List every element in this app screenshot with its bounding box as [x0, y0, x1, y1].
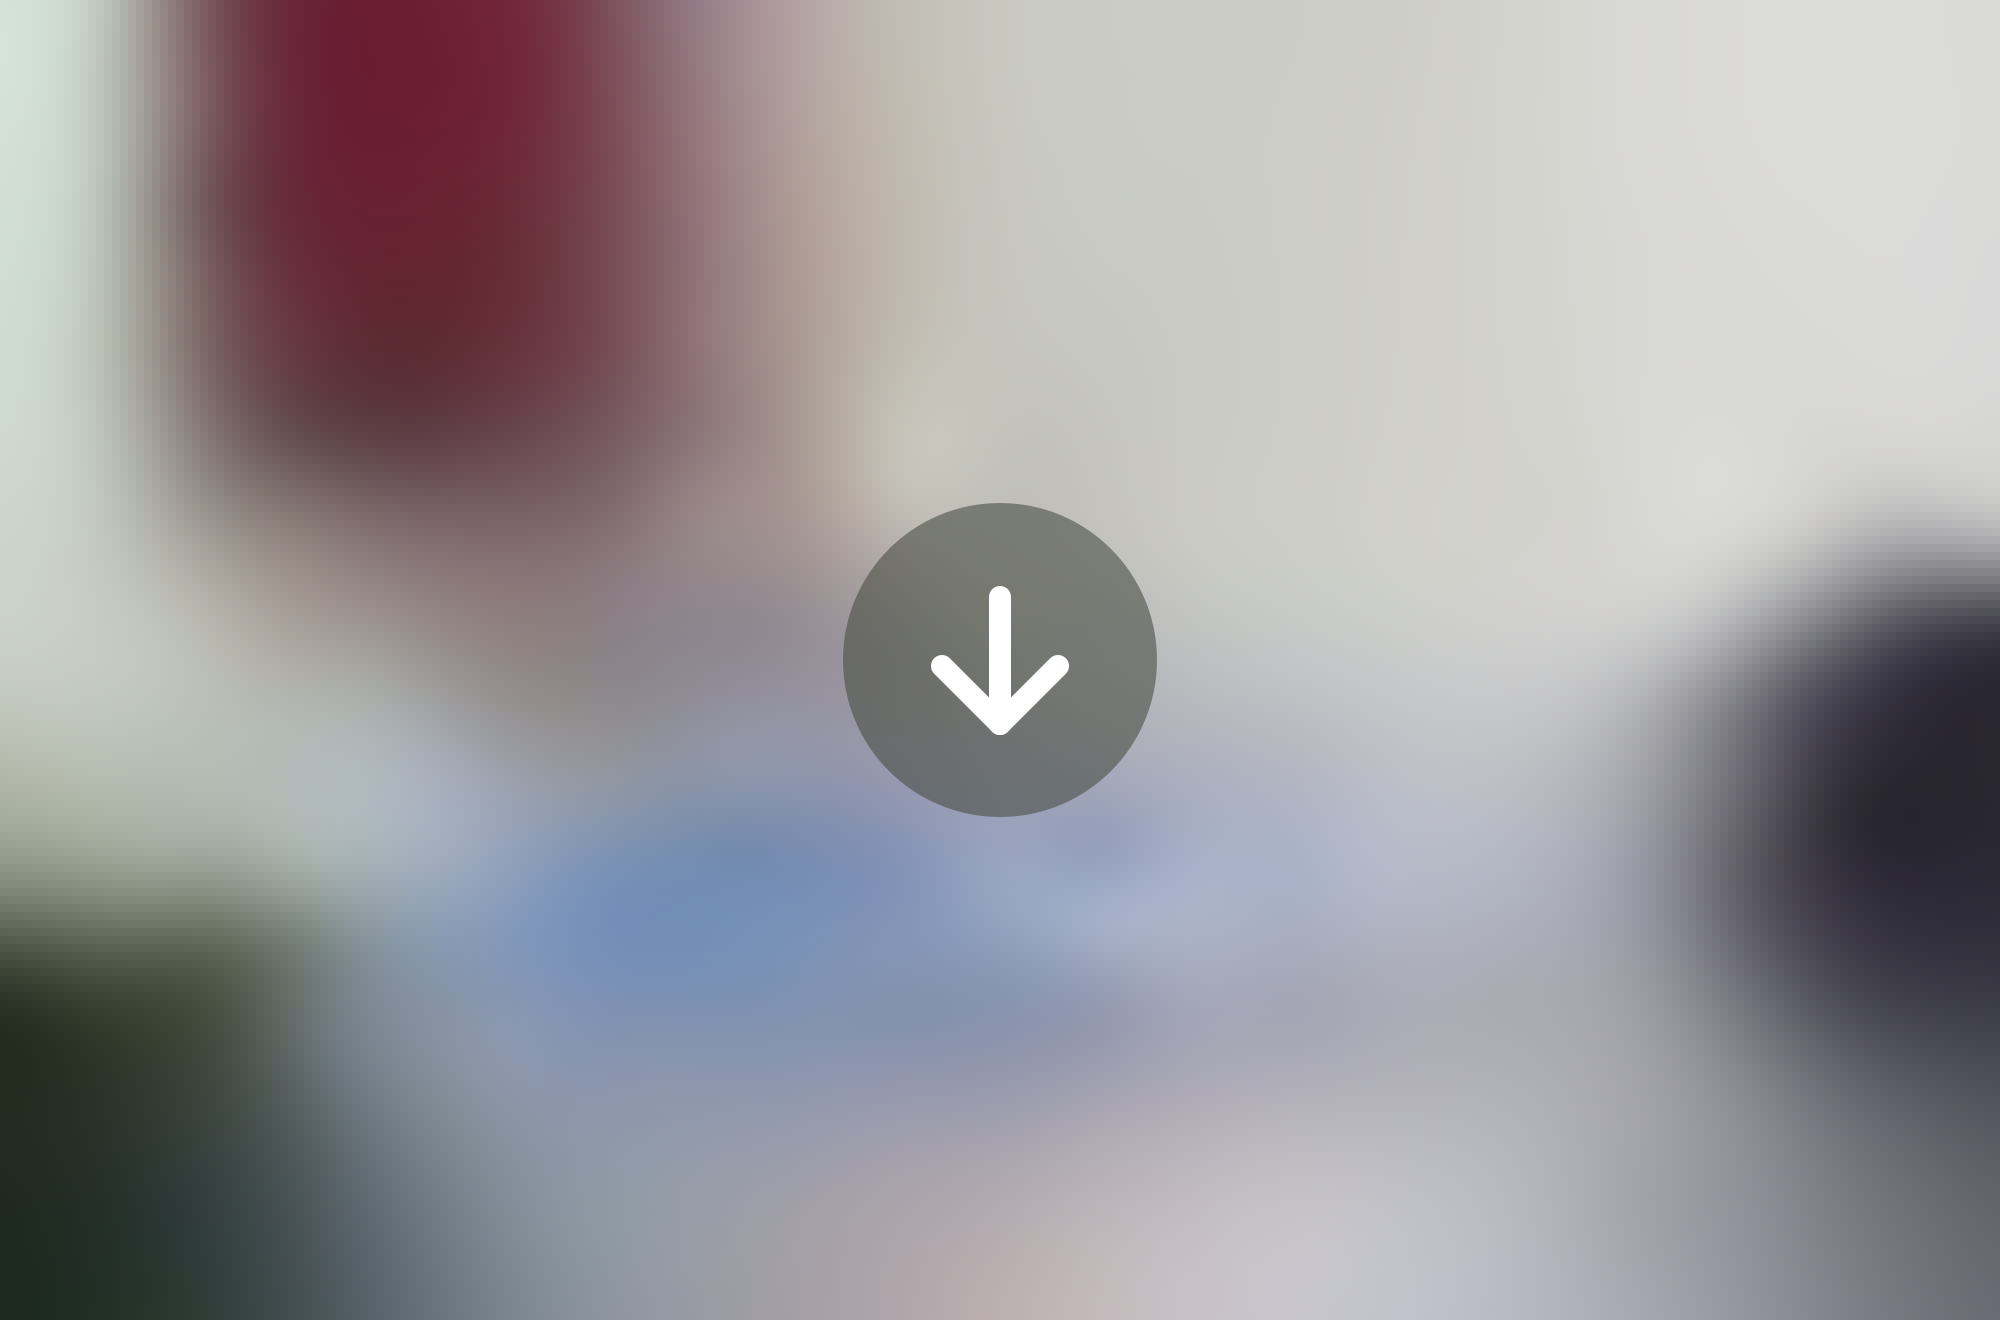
button[interactable]: Download	[843, 503, 1157, 817]
